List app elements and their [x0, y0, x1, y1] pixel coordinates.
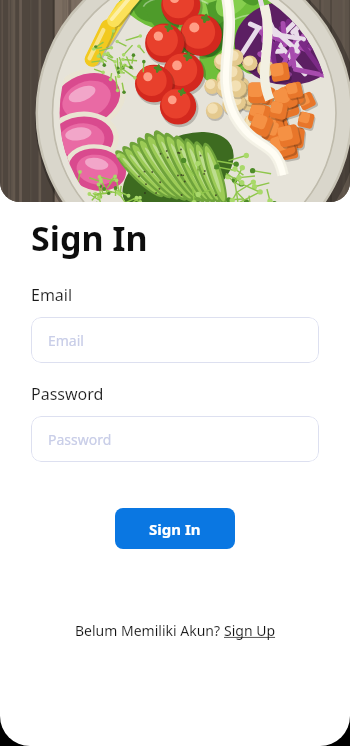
button[interactable]: Email	[31, 317, 319, 363]
button[interactable]: Password	[31, 416, 319, 462]
staticText: Sign Up	[224, 621, 276, 640]
staticText: Email	[48, 331, 84, 350]
staticText: Password	[48, 430, 112, 449]
button[interactable]: Sign Up	[224, 621, 276, 640]
staticText: Email	[31, 284, 73, 306]
other: Salad bowl photo	[0, 0, 350, 202]
staticText: Sign In	[31, 215, 148, 261]
staticText: Sign In	[149, 519, 201, 539]
button[interactable]: Sign In	[115, 508, 235, 549]
staticText: Password	[31, 383, 104, 405]
staticText: Belum Memiliki Akun?	[75, 621, 224, 640]
